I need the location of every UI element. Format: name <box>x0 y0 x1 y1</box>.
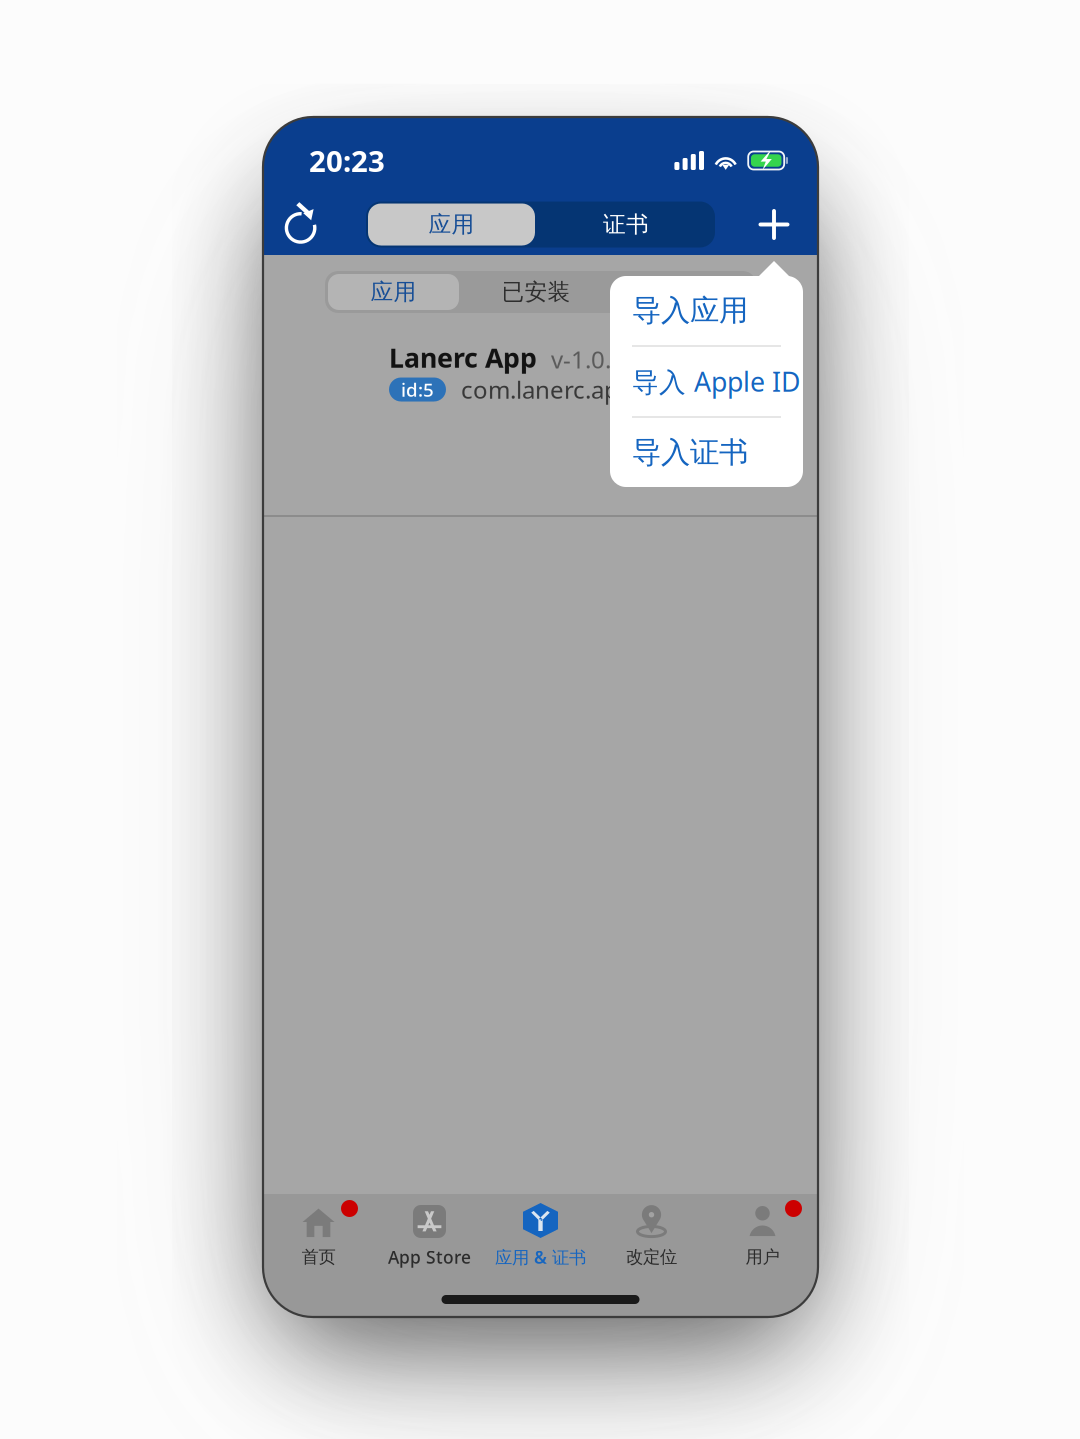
staticText: 导入证书 <box>632 434 748 470</box>
button[interactable]: 改定位 <box>596 1198 707 1270</box>
button[interactable]: 应用 & 证书 <box>485 1198 596 1270</box>
button[interactable]: Add <box>730 195 818 253</box>
staticText: Lanerc App <box>389 340 537 375</box>
button[interactable]: 证书 <box>537 201 715 247</box>
staticText: 应用 <box>428 211 474 238</box>
button[interactable]: 已安装 <box>462 271 610 313</box>
staticText: com.lanerc.app.lanerc <box>461 374 709 405</box>
button[interactable]: Lanerc App <box>263 333 818 413</box>
staticText: 用户 <box>745 1246 779 1268</box>
staticText: 证书 <box>603 211 649 238</box>
button[interactable]: 应用 <box>325 271 462 313</box>
button[interactable]: 导入应用 <box>610 276 803 345</box>
staticText: 未安装 <box>648 278 717 306</box>
staticText: 首页 <box>301 1246 335 1268</box>
button[interactable]: 应用 <box>366 201 537 247</box>
button[interactable]: 首页 <box>263 1198 374 1270</box>
staticText: 已安装 <box>501 278 570 306</box>
staticText: 导入 Apple ID <box>632 364 800 399</box>
button[interactable]: 未安装 <box>610 271 756 313</box>
staticText: 导入应用 <box>632 292 748 328</box>
staticText: 20:23 <box>309 141 385 180</box>
staticText: 应用 <box>370 278 416 306</box>
staticText: v-1.0.2 <box>551 343 625 375</box>
button[interactable]: 导入 Apple ID <box>610 347 803 416</box>
staticText: App Store <box>388 1245 471 1268</box>
button[interactable]: App Store <box>374 1198 485 1270</box>
staticText: id:5 <box>401 377 434 402</box>
button[interactable]: 用户 <box>707 1198 818 1270</box>
staticText: 应用 & 证书 <box>495 1245 586 1268</box>
button[interactable]: 导入证书 <box>610 418 803 487</box>
staticText: 改定位 <box>626 1246 677 1268</box>
button[interactable]: Refresh <box>263 195 351 253</box>
